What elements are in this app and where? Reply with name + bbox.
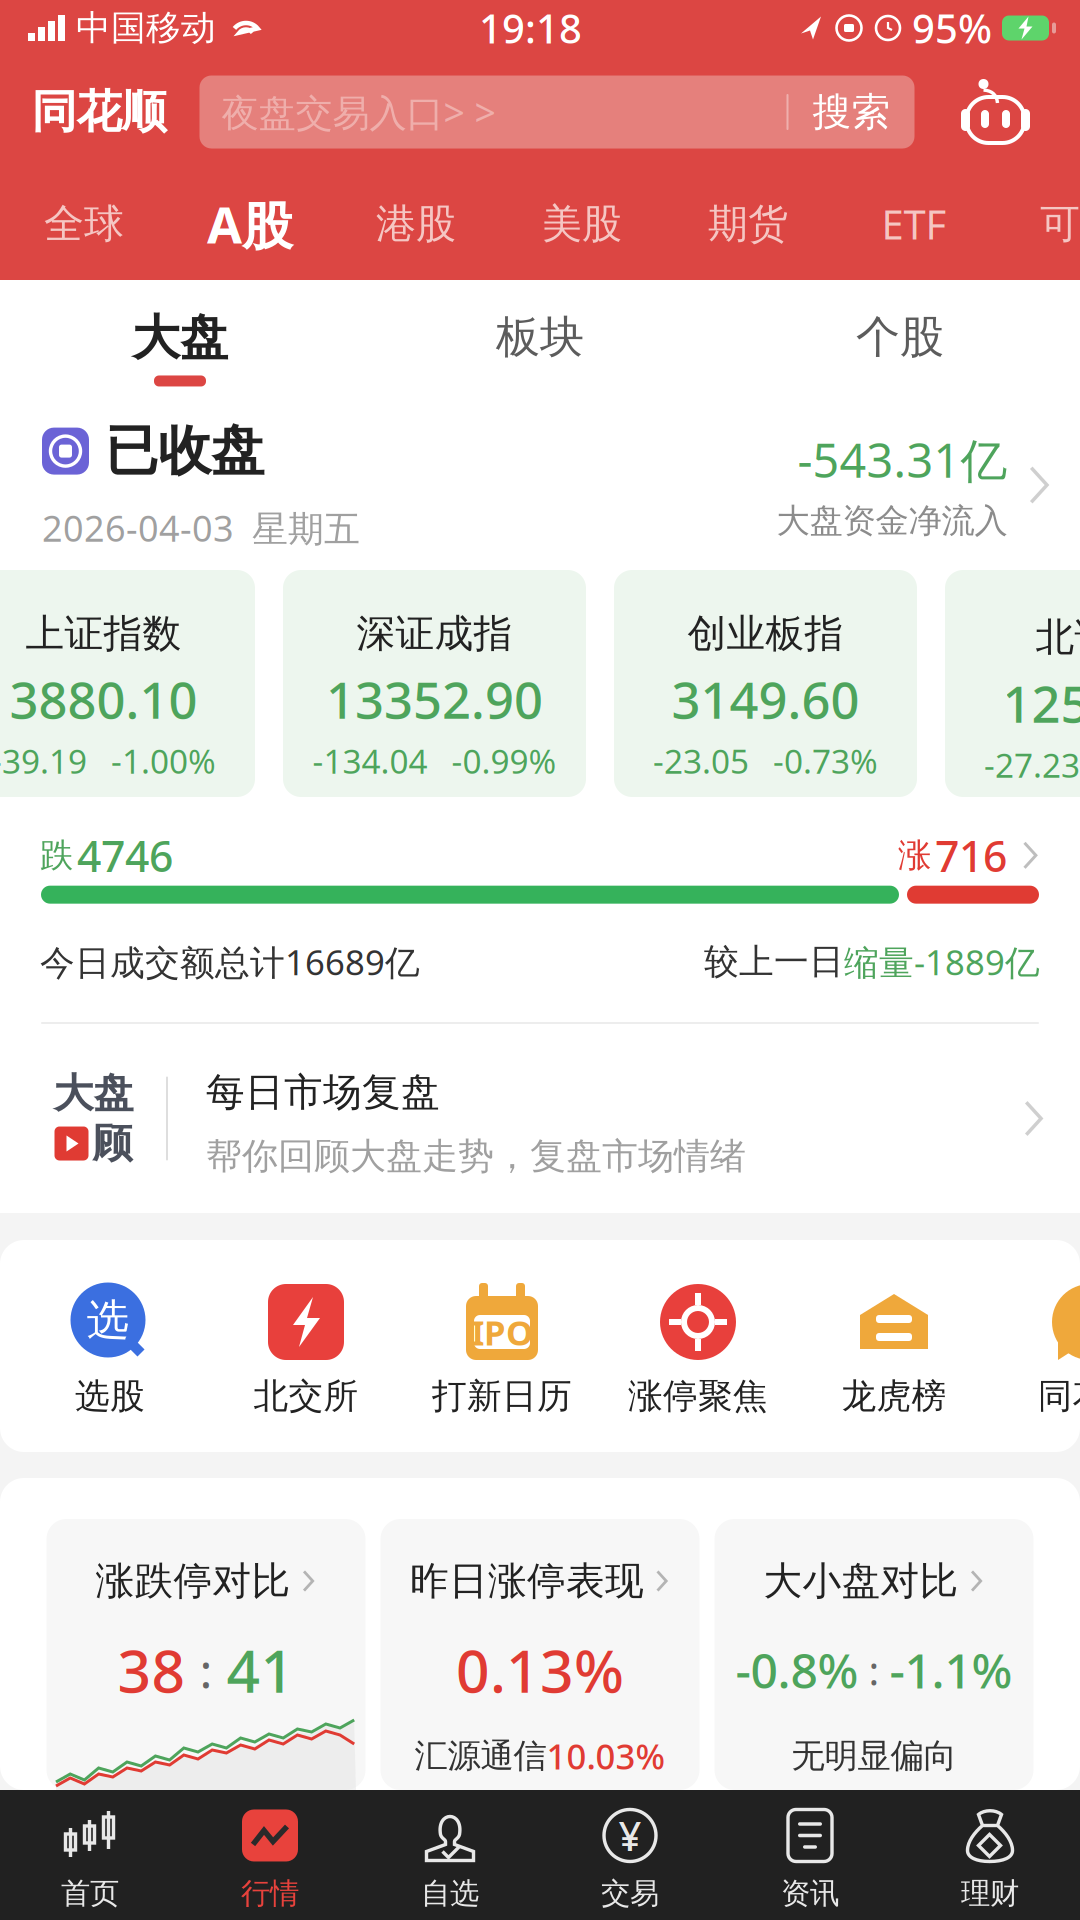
staticText: 选股 — [75, 1375, 145, 1418]
staticText: IPO — [471, 1309, 533, 1355]
staticText: 中国移动 — [76, 7, 216, 49]
staticText: 创业板指 — [687, 610, 843, 657]
staticText: 期货 — [708, 199, 788, 248]
button[interactable]: 智能助手 — [914, 79, 1076, 145]
button[interactable]: ETF — [834, 168, 994, 280]
button[interactable]: 理财 — [900, 1791, 1080, 1919]
staticText: -27.23 — [984, 743, 1080, 787]
button[interactable]: 同花順 — [992, 1282, 1080, 1418]
staticText: 今日成交额总计16689亿 — [40, 939, 420, 985]
button[interactable]: 大小盘对比 — [714, 1519, 1033, 1790]
staticText: -134.04 — [312, 739, 427, 783]
staticText: 行情 — [241, 1875, 299, 1911]
button[interactable]: 个股 — [720, 280, 1080, 400]
staticText: 北交所 — [253, 1375, 358, 1418]
button[interactable]: ¥ — [540, 1791, 720, 1919]
button[interactable]: 大盘 — [0, 280, 360, 400]
staticText: 打新日历 — [432, 1375, 572, 1418]
button[interactable]: 龙虎榜 — [796, 1282, 992, 1418]
button[interactable]: 涨跌停对比 — [46, 1519, 365, 1790]
staticText: 可转 — [1040, 199, 1080, 248]
staticText: 搜索 — [812, 88, 890, 136]
button[interactable]: 行情 — [180, 1791, 360, 1919]
staticText: 19:18 — [479, 1, 582, 54]
staticText: 个股 — [856, 310, 944, 364]
staticText: 资讯 — [781, 1875, 839, 1911]
staticText: 帮你回顾大盘走势，复盘市场情绪 — [206, 1134, 746, 1178]
staticText: 较上一日 — [704, 940, 844, 983]
staticText: ¥ — [618, 1809, 641, 1862]
button[interactable]: 昨日涨停表现 — [380, 1519, 699, 1790]
staticText: 缩量-1889亿 — [844, 939, 1040, 985]
staticText: 龙虎榜 — [841, 1375, 946, 1418]
staticText: -0.73% — [773, 739, 878, 783]
staticText: 昨日涨停表现 — [410, 1557, 644, 1605]
staticText: 交易 — [601, 1875, 659, 1911]
button[interactable]: A股 — [170, 168, 330, 280]
button[interactable]: 选 — [12, 1282, 208, 1418]
button[interactable]: 上证指数 — [0, 570, 255, 797]
staticText: 涨 — [898, 835, 931, 876]
staticText: 汇源通信 — [414, 1735, 546, 1776]
button[interactable]: 深证成指 — [283, 570, 586, 797]
staticText: 选 — [86, 1294, 129, 1346]
staticText: 每日市场复盘 — [206, 1069, 440, 1116]
staticText: 涨停聚焦 — [628, 1375, 768, 1418]
staticText: 大小盘对比 — [764, 1557, 959, 1605]
staticText: -0.99% — [451, 739, 556, 783]
button[interactable]: 可转 — [1000, 168, 1080, 280]
staticText: 同花順 — [1037, 1375, 1080, 1418]
button[interactable]: 创业板指 — [614, 570, 917, 797]
staticText: ETF — [881, 197, 946, 250]
staticText: 0.13% — [456, 1631, 624, 1709]
staticText: 38 — [117, 1631, 185, 1709]
staticText: 美股 — [542, 199, 622, 248]
button[interactable]: 已收盘 — [0, 400, 1080, 570]
staticText: 首页 — [61, 1875, 119, 1911]
staticText: 深证成指 — [356, 610, 512, 657]
staticText: -1.1% — [889, 1638, 1012, 1702]
staticText: 跌 — [40, 835, 73, 876]
staticText: 3149.60 — [671, 665, 859, 733]
staticText: -23.05 — [653, 739, 749, 783]
button[interactable]: 美股 — [502, 168, 662, 280]
staticText: : — [868, 1643, 879, 1696]
button[interactable]: IPO — [404, 1282, 600, 1418]
button[interactable]: 大盘 — [0, 1024, 1080, 1213]
staticText: 3880.10 — [9, 665, 197, 733]
staticText: -39.19 — [0, 739, 87, 783]
button[interactable]: 资讯 — [720, 1791, 900, 1919]
button[interactable]: 夜盘交易入口> > — [199, 75, 914, 148]
button[interactable]: 跌 — [0, 800, 1080, 1022]
button[interactable]: 首页 — [0, 1791, 180, 1919]
button[interactable]: 涨停聚焦 — [600, 1282, 796, 1418]
staticText: 顾 — [92, 1119, 132, 1168]
button[interactable]: 全球 — [4, 168, 164, 280]
button[interactable]: 板块 — [360, 280, 720, 400]
staticText: A股 — [207, 190, 293, 258]
staticText: 涨跌停对比 — [96, 1557, 291, 1605]
staticText: 95% — [912, 1, 992, 54]
button[interactable]: 自选 — [360, 1791, 540, 1919]
button[interactable]: 北证50 — [945, 570, 1080, 797]
staticText: 港股 — [376, 199, 456, 248]
staticText: 716 — [935, 827, 1007, 884]
staticText: 夜盘交易入口> > — [221, 87, 495, 137]
staticText: 无明显偏向 — [791, 1735, 956, 1776]
staticText: 北证50 — [1035, 610, 1080, 661]
button[interactable]: 港股 — [336, 168, 496, 280]
staticText: 自选 — [421, 1875, 479, 1911]
staticText: 已收盘 — [105, 418, 264, 484]
staticText: 13352.90 — [326, 665, 543, 733]
staticText: 全球 — [44, 199, 124, 248]
button[interactable]: 北交所 — [208, 1282, 404, 1418]
staticText: 大盘资金净流入 — [776, 500, 1007, 541]
staticText: 1253.30 — [1002, 669, 1080, 737]
button[interactable]: 期货 — [668, 168, 828, 280]
staticText: 大盘 — [132, 308, 228, 367]
staticText: : — [199, 1638, 212, 1702]
staticText: 41 — [226, 1631, 294, 1709]
staticText: 板块 — [496, 310, 584, 364]
staticText: -0.8% — [735, 1638, 858, 1702]
staticText: 10.03% — [546, 1733, 665, 1779]
